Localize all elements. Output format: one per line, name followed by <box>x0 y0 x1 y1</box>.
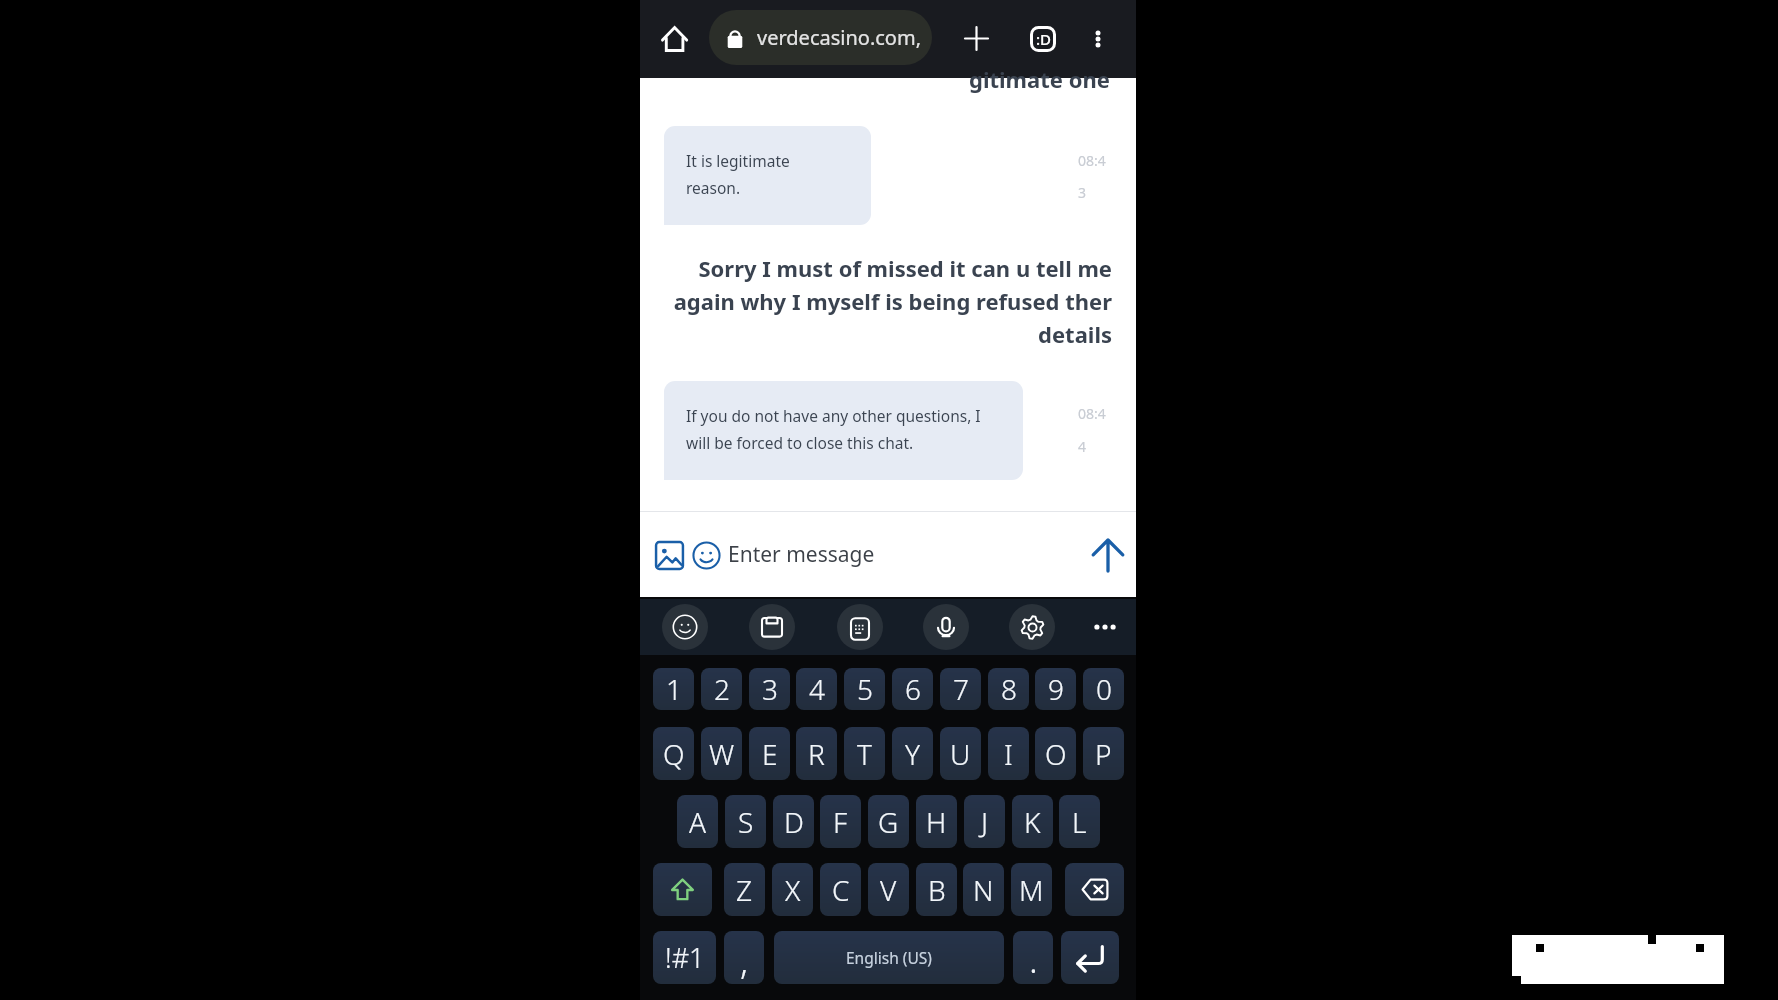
button[interactable]: !#1 <box>653 931 716 984</box>
staticText: gitimate one <box>969 64 1110 94</box>
button[interactable]: C <box>820 863 861 916</box>
button[interactable]: Q <box>653 727 694 780</box>
button[interactable]: G <box>868 795 909 848</box>
staticText: !#1 <box>665 939 705 976</box>
staticText: I <box>1004 735 1013 773</box>
button[interactable]: Emoji <box>662 604 708 650</box>
button[interactable]: 3 <box>749 668 790 710</box>
staticText: Enter message <box>728 540 875 569</box>
button[interactable]: English (US) <box>774 931 1004 984</box>
button[interactable]: 9 <box>1035 668 1076 710</box>
staticText: 8 <box>1001 670 1017 708</box>
button[interactable]: U <box>940 727 981 780</box>
button[interactable]: D <box>773 795 814 848</box>
button[interactable]: 1 <box>653 668 694 710</box>
button[interactable]: A <box>677 795 718 848</box>
button[interactable]: More <box>1082 604 1128 650</box>
staticText: 5 <box>857 670 873 708</box>
button[interactable]: B <box>916 863 957 916</box>
button[interactable]: 0 <box>1083 668 1124 710</box>
staticText: Y <box>905 735 920 773</box>
button[interactable]: More options <box>1073 14 1122 63</box>
staticText: K <box>1024 803 1041 841</box>
staticText: 2 <box>714 670 730 708</box>
button[interactable]: 7 <box>940 668 981 710</box>
button[interactable]: If you do not have any other questions, … <box>664 381 1023 480</box>
button[interactable]: V <box>868 863 909 916</box>
button[interactable]: Shift <box>653 863 712 916</box>
staticText: N <box>973 871 994 909</box>
button[interactable]: Send <box>1084 531 1132 579</box>
button[interactable]: O <box>1035 727 1076 780</box>
button[interactable]: New tab <box>952 14 1001 63</box>
staticText: B <box>928 871 946 909</box>
staticText: S <box>738 803 754 841</box>
button[interactable]: 6 <box>892 668 933 710</box>
staticText: 08:4 <box>1078 404 1106 423</box>
button[interactable]: Backspace <box>1065 863 1124 916</box>
button[interactable]: 5 <box>844 668 885 710</box>
button[interactable]: W <box>701 727 742 780</box>
button[interactable]: 2 <box>701 668 742 710</box>
staticText: 4 <box>1078 437 1087 456</box>
button[interactable]: X <box>772 863 813 916</box>
button[interactable]: Voice input <box>923 604 969 650</box>
staticText: It is legitimate reason. <box>686 150 790 198</box>
button[interactable]: Settings <box>1009 604 1055 650</box>
staticText: A <box>689 803 707 841</box>
staticText: V <box>880 871 897 909</box>
staticText: Sorry I must of missed it can u tell me … <box>660 253 1112 350</box>
button[interactable]: 4 <box>796 668 837 710</box>
staticText: D <box>784 803 804 841</box>
button[interactable]: verdecasino.com, <box>709 10 932 65</box>
staticText: O <box>1045 735 1067 773</box>
button[interactable]: 8 <box>988 668 1029 710</box>
button[interactable]: K <box>1012 795 1053 848</box>
button[interactable]: . <box>1013 931 1053 984</box>
staticText: M <box>1019 871 1044 909</box>
button[interactable]: Z <box>724 863 765 916</box>
button[interactable]: Keyboard modes <box>837 604 883 650</box>
staticText: 7 <box>953 670 969 708</box>
staticText: verdecasino.com, <box>757 24 922 51</box>
button[interactable]: Clipboard <box>749 604 795 650</box>
staticText: . <box>1029 935 1038 984</box>
button[interactable]: I <box>988 727 1029 780</box>
button[interactable]: N <box>963 863 1004 916</box>
staticText: 1 <box>666 670 682 708</box>
staticText: W <box>709 735 735 773</box>
staticText: X <box>785 871 801 909</box>
staticText: L <box>1072 803 1087 841</box>
button[interactable]: T <box>844 727 885 780</box>
button[interactable]: H <box>916 795 957 848</box>
staticText: 6 <box>905 670 921 708</box>
button[interactable]: Home <box>649 14 698 63</box>
staticText: English (US) <box>846 947 932 968</box>
button[interactable]: F <box>820 795 861 848</box>
button[interactable]: L <box>1059 795 1100 848</box>
staticText: F <box>833 803 848 841</box>
button[interactable]: Emoji <box>690 539 722 571</box>
button[interactable]: S <box>725 795 766 848</box>
staticText: P <box>1095 735 1112 773</box>
button[interactable]: R <box>796 727 837 780</box>
button[interactable]: Y <box>892 727 933 780</box>
button[interactable]: It is legitimate reason. <box>664 126 871 225</box>
staticText: H <box>926 803 947 841</box>
staticText: 4 <box>809 670 825 708</box>
staticText: Q <box>663 735 685 773</box>
button[interactable]: J <box>964 795 1005 848</box>
button[interactable]: , <box>724 931 764 984</box>
button[interactable]: Tabs <box>1018 14 1067 63</box>
staticText: 3 <box>1078 183 1087 202</box>
staticText: R <box>808 735 825 773</box>
button[interactable]: Attach image <box>652 538 686 572</box>
button[interactable]: P <box>1083 727 1124 780</box>
staticText: :D <box>1036 29 1052 49</box>
staticText: If you do not have any other questions, … <box>686 405 981 453</box>
button[interactable]: E <box>749 727 790 780</box>
staticText: J <box>981 803 989 841</box>
button[interactable]: Enter <box>1061 931 1119 984</box>
staticText: 08:4 <box>1078 151 1106 170</box>
button[interactable]: M <box>1011 863 1052 916</box>
